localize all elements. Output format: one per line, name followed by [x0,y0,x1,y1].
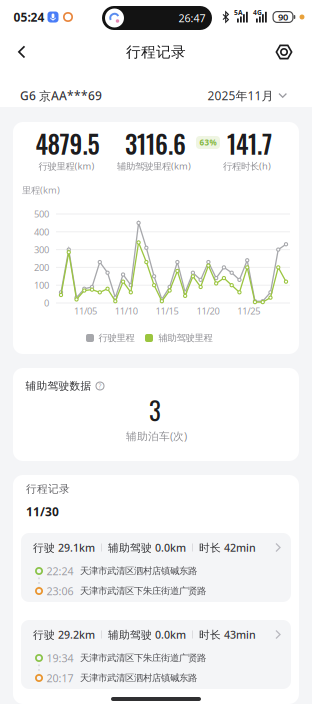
staticText: 辅助驾驶 0.0km [108,540,186,555]
staticText: 行程记录 [126,43,186,61]
staticText: 辅助驾驶数据 [25,379,91,392]
button[interactable]: 行驶 29.1km [21,533,291,602]
staticText: 时长 42min [199,540,256,555]
staticText: 19:34 [46,651,73,665]
staticText: 时长 43min [199,627,256,642]
staticText: 里程(km) [22,184,60,196]
staticText: 63% [199,137,216,148]
staticText: 11/10 [115,305,138,317]
staticText: 行驶 29.2km [33,627,95,642]
button[interactable]: 2025年11月 [207,87,286,103]
staticText: 天津市武清区下朱庄街道广贤路 [80,652,206,664]
staticText: 4G [253,8,262,17]
staticText: 行程记录 [26,482,70,495]
staticText: 22:24 [46,564,73,578]
staticText: 11/25 [237,305,260,317]
staticText: 11/20 [196,305,219,317]
staticText: 100 [34,279,49,291]
staticText: G6 京AA***69 [20,87,102,103]
staticText: 辅助驾驶 0.0km [108,627,186,642]
staticText: 05:24 [13,9,44,25]
staticText: 141.7 [227,125,272,162]
button[interactable]: Back [8,37,35,66]
staticText: 300 [34,243,49,256]
staticText: 行驶 29.1km [33,540,95,555]
staticText: 3 [149,392,161,428]
button[interactable]: Settings [269,37,298,66]
staticText: 行驶里程 [98,332,134,344]
staticText: 500 [34,208,49,220]
staticText: 行驶里程(km) [38,160,94,172]
staticText: 3116.6 [125,125,186,162]
staticText: 20:17 [46,671,73,685]
staticText: 辅助驾驶里程(km) [117,160,191,172]
staticText: 天津市武清区泗村店镇碱东路 [80,565,197,577]
staticText: ? [98,382,101,390]
button[interactable]: 行驶 29.2km [21,620,291,689]
staticText: 26:47 [178,11,205,25]
staticText: 天津市武清区下朱庄街道广贤路 [80,585,206,597]
staticText: 11/05 [74,305,97,317]
staticText: 辅助泊车(次) [126,429,187,443]
staticText: 辅助驾驶里程 [158,332,212,344]
staticText: 200 [34,261,49,274]
staticText: 11/30 [26,503,59,519]
staticText: 11/15 [156,305,179,317]
staticText: 行程时长(h) [223,160,271,172]
staticText: 400 [34,226,49,238]
staticText: 0 [44,297,49,309]
staticText: 2025年11月 [207,87,273,103]
staticText: 23:06 [46,584,73,598]
staticText: 5A [234,8,243,17]
staticText: 4879.5 [35,125,99,162]
staticText: 天津市武清区泗村店镇碱东路 [80,672,197,684]
staticText: 90 [278,11,288,23]
button[interactable]: 辅助驾驶数据 [25,379,104,392]
